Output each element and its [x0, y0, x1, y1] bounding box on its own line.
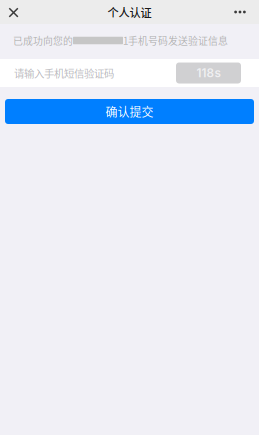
button[interactable]: 118s	[176, 62, 241, 83]
staticText: 1手机号码发送验证信息	[123, 33, 228, 48]
button[interactable]: Close	[0, 0, 26, 24]
staticText: 确认提交	[105, 103, 153, 120]
staticText: 个人认证	[107, 4, 151, 20]
button[interactable]: More	[228, 0, 252, 24]
button[interactable]: 确认提交	[5, 99, 254, 124]
staticText: 已成功向您的	[13, 33, 73, 48]
staticText: 118s	[196, 66, 220, 80]
staticText: 请输入手机短信验证码	[14, 65, 114, 81]
